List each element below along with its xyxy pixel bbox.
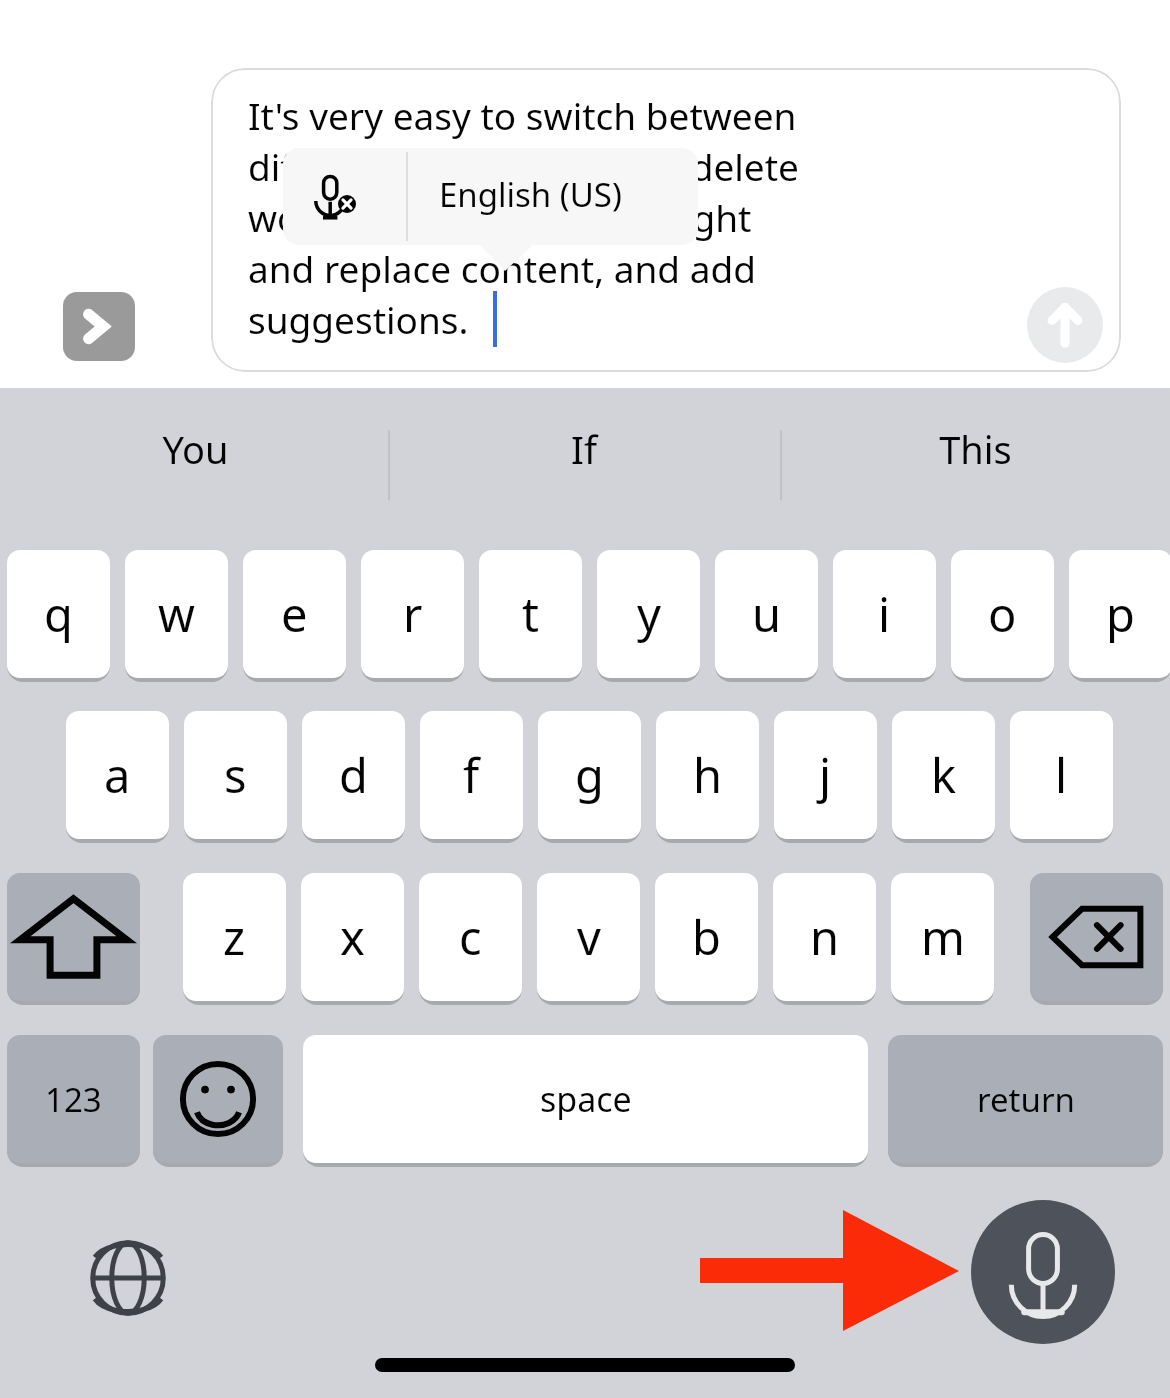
button[interactable]: a [66,711,169,839]
button[interactable]: n [773,873,876,1001]
button[interactable]: z [183,873,286,1001]
button[interactable]: Expand [63,292,135,361]
button[interactable]: space [303,1035,868,1163]
button[interactable]: Change language [86,1236,170,1320]
button[interactable]: Dictation [971,1200,1115,1344]
button[interactable]: d [302,711,405,839]
button[interactable]: t [479,550,582,678]
button[interactable]: This [795,388,1155,510]
staticText: g [575,743,604,807]
button[interactable]: s [184,711,287,839]
button[interactable]: If [404,388,764,510]
staticText: English (US) [439,172,622,217]
staticText: o [988,582,1017,646]
staticText: If [571,423,597,475]
button[interactable]: e [243,550,346,678]
button[interactable]: j [774,711,877,839]
button[interactable]: i [833,550,936,678]
button[interactable]: m [891,873,994,1001]
button[interactable]: It's very easy to switch between differe… [211,68,1121,372]
staticText: w [158,582,195,646]
button[interactable]: y [597,550,700,678]
staticText: y [637,582,661,646]
staticText: x [340,905,365,969]
button[interactable]: w [125,550,228,678]
staticText: n [810,905,840,969]
button[interactable]: Backspace [1030,873,1163,1001]
button[interactable]: r [361,550,464,678]
button[interactable]: 123 [7,1035,140,1163]
button[interactable]: g [538,711,641,839]
staticText: i [878,582,891,646]
button[interactable]: l [1010,711,1113,839]
button[interactable]: c [419,873,522,1001]
staticText: h [693,743,723,807]
staticText: s [224,743,247,807]
staticText: q [44,582,73,646]
staticText: a [104,743,131,807]
button[interactable]: o [951,550,1054,678]
staticText: v [577,905,601,969]
staticText: c [459,905,482,969]
button[interactable]: Send [1027,287,1103,363]
staticText: return [977,1077,1075,1122]
staticText: z [223,905,246,969]
button[interactable]: b [655,873,758,1001]
staticText: p [1106,582,1135,646]
staticText: 123 [45,1077,102,1122]
staticText: It's very easy to switch between differe… [248,90,799,345]
staticText: You [162,423,229,475]
button[interactable]: x [301,873,404,1001]
button[interactable]: h [656,711,759,839]
button[interactable]: q [7,550,110,678]
staticText: k [931,743,957,807]
button[interactable]: English (US) [423,148,606,258]
button[interactable]: Emoji [153,1035,283,1163]
button[interactable]: Shift [7,873,140,1001]
staticText: u [752,582,782,646]
button[interactable]: k [892,711,995,839]
staticText: space [540,1076,632,1122]
button[interactable]: Mute microphone [305,168,365,228]
staticText: This [939,423,1012,475]
staticText: l [1055,743,1068,807]
button[interactable]: return [888,1035,1163,1163]
staticText: f [463,743,480,807]
button[interactable]: p [1069,550,1170,678]
staticText: d [339,743,368,807]
staticText: b [692,905,721,969]
button[interactable]: f [420,711,523,839]
staticText: j [819,743,832,807]
staticText: e [281,582,308,646]
staticText: m [921,905,965,969]
staticText: r [403,582,423,646]
button[interactable]: v [537,873,640,1001]
button[interactable]: You [15,388,375,510]
staticText: t [522,582,539,646]
button[interactable]: u [715,550,818,678]
